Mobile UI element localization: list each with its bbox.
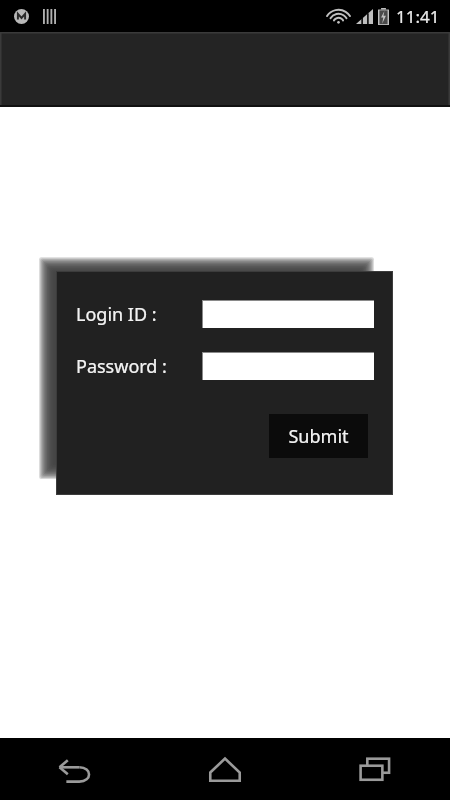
staticText: Password : <box>76 354 167 379</box>
staticText: 11:41 <box>396 5 440 28</box>
staticText: Login ID : <box>76 302 157 327</box>
staticText: Submit <box>288 424 349 449</box>
button[interactable]: Home <box>150 738 300 800</box>
button[interactable]: Recent apps <box>300 738 450 800</box>
button[interactable]: Submit <box>269 414 368 458</box>
button[interactable]: Back <box>0 738 150 800</box>
